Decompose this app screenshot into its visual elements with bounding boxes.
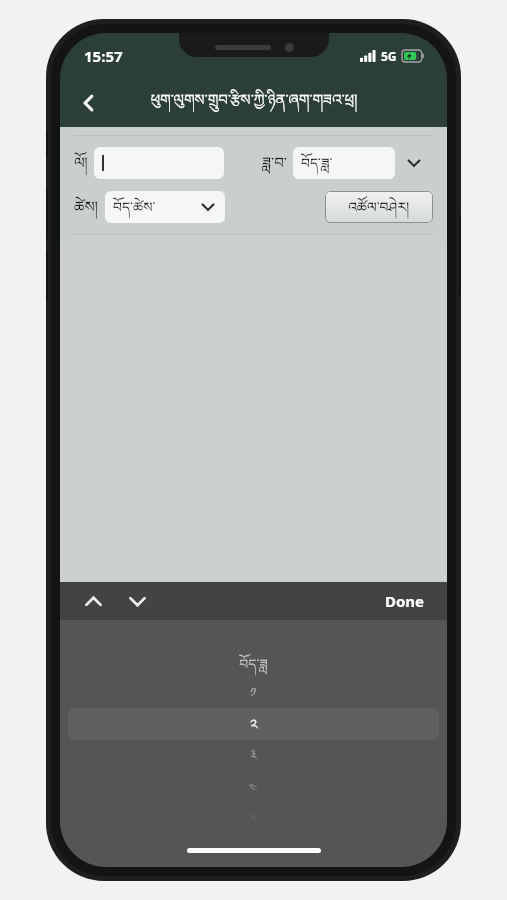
staticText: ༥ <box>251 806 256 832</box>
staticText: Done <box>385 591 425 611</box>
staticText: ལོ། <box>74 146 88 180</box>
staticText: བོད་ཟླ་ <box>301 147 333 179</box>
button[interactable]: བོད་ཚེས་ <box>105 191 225 223</box>
button[interactable]: འཚོལ་བཤེར། <box>325 191 433 223</box>
staticText: ༢ <box>250 708 258 740</box>
staticText: 15:57 <box>84 46 123 66</box>
staticText: བོད་ཚེས་ <box>113 191 156 223</box>
button[interactable]: Next field <box>118 582 156 620</box>
staticText: འཚོལ་བཤེར། <box>348 191 410 223</box>
button[interactable]: Done <box>377 587 433 615</box>
staticText: ཟླ་བ་ <box>262 146 287 180</box>
staticText: བོད་ཟླ <box>239 648 268 687</box>
staticText: ༡ <box>250 678 257 708</box>
staticText: ༤ <box>249 774 258 806</box>
staticText: ཕུག་ལུགས་གྲུབ་རྩིས་ཀྱི་ཉིན་ཞག་གཟའ་ཕྲ། <box>150 83 358 125</box>
button[interactable]: Back <box>68 82 110 124</box>
staticText: ཚེས། <box>74 190 99 224</box>
button[interactable]: Previous field <box>74 582 112 620</box>
button[interactable]: བོད་ཟླ་ <box>293 147 433 179</box>
staticText: 5G <box>381 48 397 64</box>
button[interactable] <box>94 147 224 179</box>
button[interactable]: ༢ <box>68 708 439 740</box>
staticText: ༣ <box>250 740 257 774</box>
